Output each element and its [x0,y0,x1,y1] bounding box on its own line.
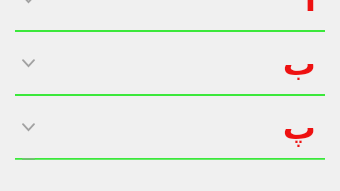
staticText: ب [282,44,316,82]
button[interactable]: Expand [0,32,340,94]
button[interactable]: Expand [17,0,39,10]
button[interactable]: Expand [17,116,39,138]
button[interactable]: Expand [17,52,39,74]
staticText: ا [304,0,316,18]
staticText: پ [282,108,316,146]
button[interactable]: Expand [0,96,340,158]
button[interactable]: Expand [0,0,340,30]
